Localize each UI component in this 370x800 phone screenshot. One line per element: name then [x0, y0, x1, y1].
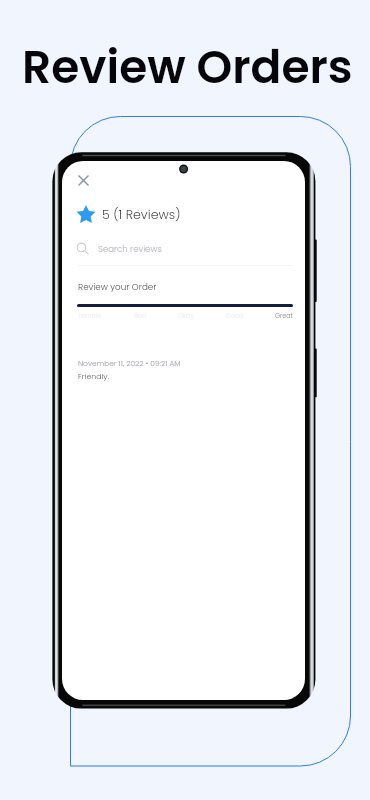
- staticText: Bad: [134, 311, 147, 320]
- staticText: 5 (1 Reviews): [102, 206, 181, 224]
- button[interactable]: Okay: [178, 311, 194, 320]
- button[interactable]: Bad: [134, 311, 147, 320]
- button[interactable]: Great: [275, 311, 293, 320]
- staticText: Great: [275, 311, 293, 320]
- staticText: Terrible: [78, 311, 102, 320]
- staticText: Review your Order: [78, 281, 157, 293]
- staticText: Friendly.: [78, 371, 109, 382]
- button[interactable]: Close: [71, 168, 96, 193]
- button[interactable]: Terrible: [78, 311, 102, 320]
- staticText: November 11, 2022 • 09:21 AM: [78, 358, 181, 368]
- staticText: Okay: [178, 311, 194, 320]
- button[interactable]: Good: [226, 311, 244, 320]
- staticText: Search reviews: [98, 243, 162, 255]
- staticText: Good: [226, 311, 244, 320]
- staticText: Review Orders: [22, 35, 353, 99]
